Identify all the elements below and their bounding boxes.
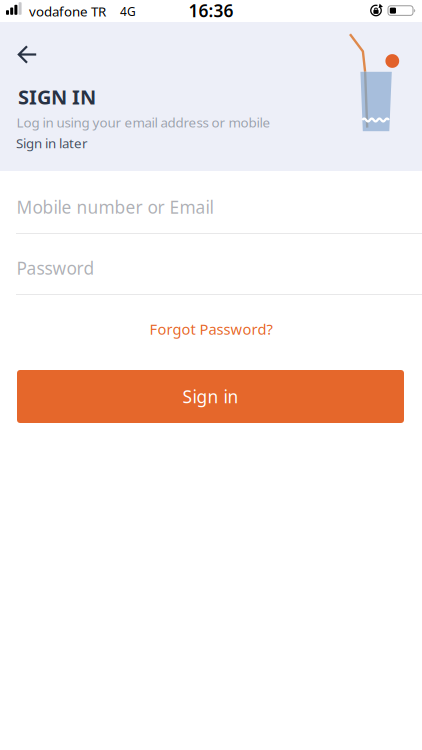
staticText: Forgot Password? xyxy=(149,319,272,339)
staticText: Password xyxy=(16,256,94,279)
button[interactable]: Password xyxy=(0,241,422,295)
staticText: vodafone TR xyxy=(29,2,106,20)
button[interactable]: Sign in xyxy=(17,370,404,423)
button[interactable]: Sign in later xyxy=(16,134,88,152)
staticText: 16:36 xyxy=(188,0,233,22)
staticText: Mobile number or Email xyxy=(16,195,213,218)
staticText: SIGN IN xyxy=(18,83,96,110)
button[interactable]: Forgot Password? xyxy=(0,319,422,339)
staticText: Sign in xyxy=(182,385,238,408)
button[interactable]: Mobile number or Email xyxy=(0,180,422,234)
staticText: Sign in later xyxy=(16,134,88,152)
staticText: 4G xyxy=(120,3,136,19)
button[interactable] xyxy=(8,35,48,75)
staticText: Log in using your email address or mobil… xyxy=(16,113,270,131)
